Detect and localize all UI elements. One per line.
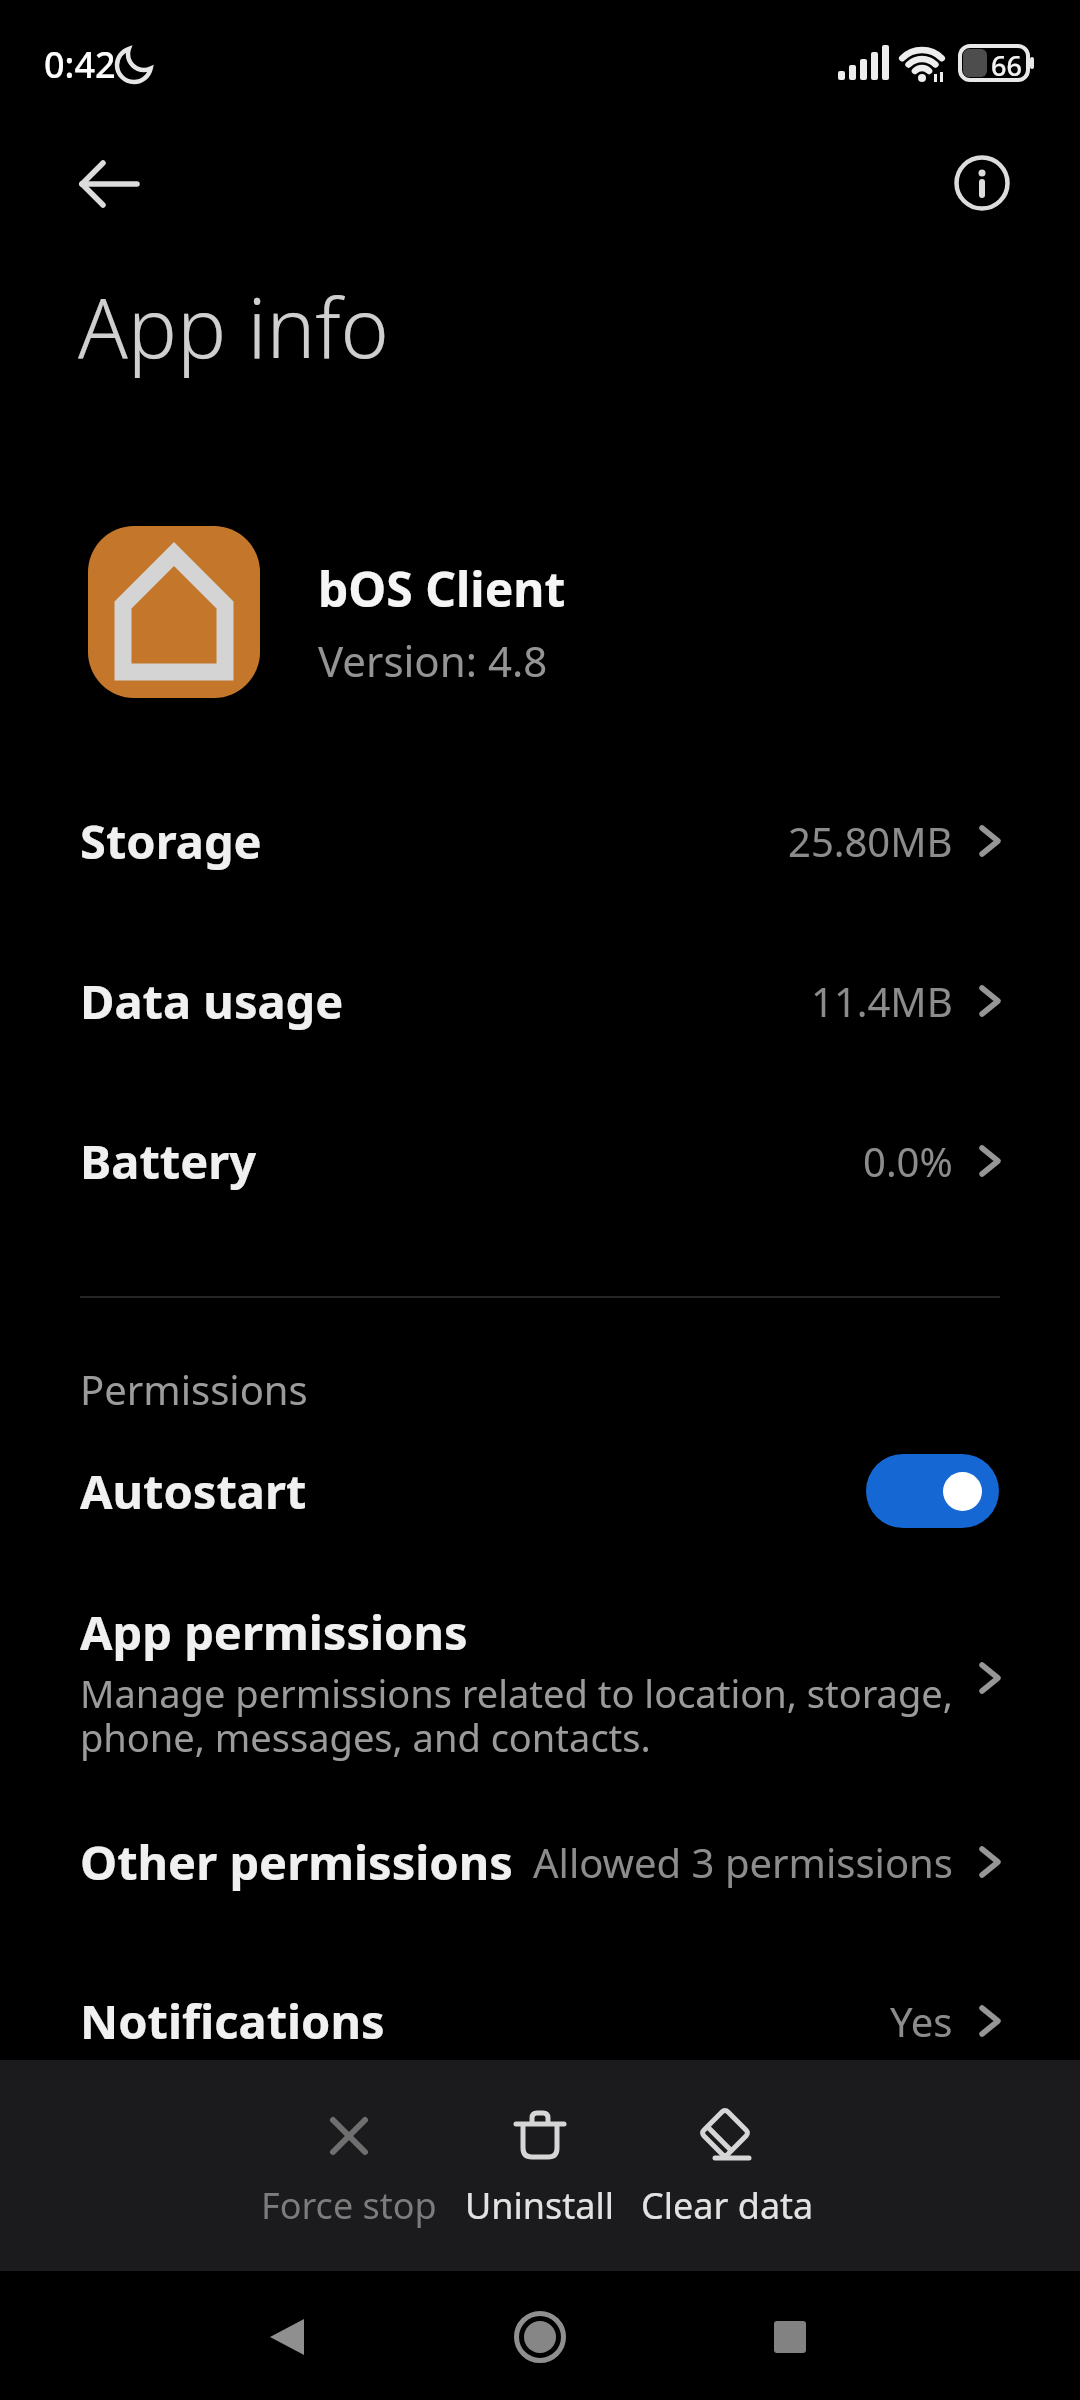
button[interactable] [56,158,160,210]
staticText: Notifications [80,1989,385,2053]
button[interactable] [505,2302,575,2372]
staticText: 25.80MB [788,814,953,868]
staticText: 0.0% [863,1134,953,1188]
staticText: bOS Client [318,556,566,621]
staticText: Force stop [261,2181,437,2230]
staticText: App permissions [80,1600,468,1664]
staticText: 0:42 [44,40,116,89]
button[interactable]: Clear data [627,2098,827,2230]
button[interactable]: Storage [0,781,1080,901]
button[interactable]: Data usage [0,941,1080,1061]
staticText: Allowed 3 permissions [533,1835,953,1889]
staticText: Manage permissions related to location, … [80,1667,953,1763]
staticText: 11.4MB [811,974,953,1028]
staticText: App info [78,270,389,382]
button[interactable]: Battery [0,1101,1080,1221]
staticText: Battery [80,1129,257,1193]
button[interactable]: Uninstall [440,2098,640,2230]
staticText: Other permissions [80,1830,513,1894]
staticText: Version: 4.8 [318,632,548,689]
staticText: Autostart [80,1459,307,1523]
button[interactable]: Autostart [0,1431,1080,1551]
staticText: 66 [991,47,1022,79]
button[interactable] [755,2302,825,2372]
staticText: Yes [890,1994,953,2048]
staticText: Clear data [641,2181,814,2230]
button[interactable]: Notifications [0,1961,1080,2081]
button[interactable] [252,2302,322,2372]
button[interactable]: Force stop [249,2098,449,2230]
staticText: Data usage [80,969,344,1033]
staticText: Storage [80,809,262,873]
staticText: Permissions [80,1362,308,1416]
staticText: Uninstall [465,2181,615,2230]
button[interactable]: Other permissions [0,1802,1080,1922]
button[interactable]: App permissions [0,1570,1080,1785]
button[interactable] [944,145,1020,221]
